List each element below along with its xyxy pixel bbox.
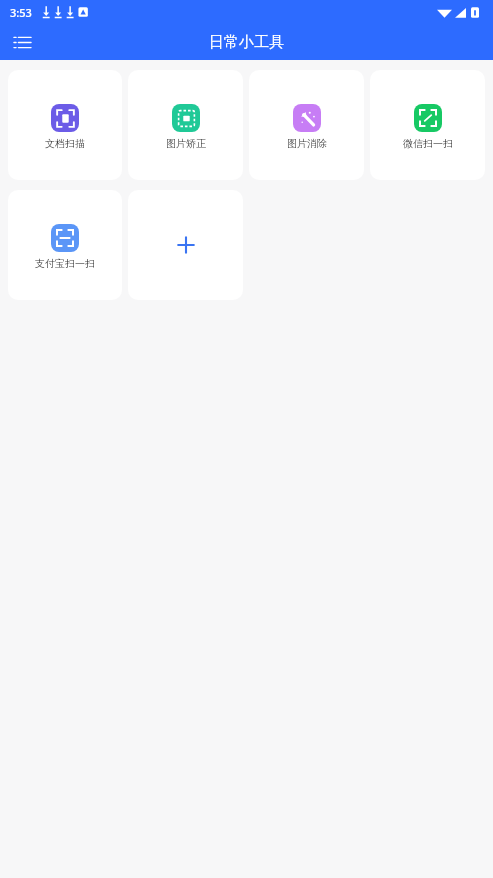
button[interactable]: 文档扫描 — [8, 70, 122, 180]
button[interactable]: 图片矫正 — [128, 70, 243, 180]
button[interactable]: 支付宝扫一扫 — [8, 190, 122, 300]
staticText: 日常小工具 — [209, 33, 284, 52]
button[interactable]: Add tool — [128, 190, 243, 300]
staticText: 图片消除 — [287, 137, 327, 150]
button[interactable]: Menu — [6, 26, 38, 58]
button[interactable]: 图片消除 — [249, 70, 364, 180]
staticText: 图片矫正 — [166, 137, 206, 150]
staticText: 微信扫一扫 — [403, 137, 453, 150]
staticText: 3:53 — [10, 5, 32, 20]
button[interactable]: 微信扫一扫 — [370, 70, 485, 180]
staticText: 文档扫描 — [45, 137, 85, 150]
staticText: 支付宝扫一扫 — [35, 257, 95, 270]
